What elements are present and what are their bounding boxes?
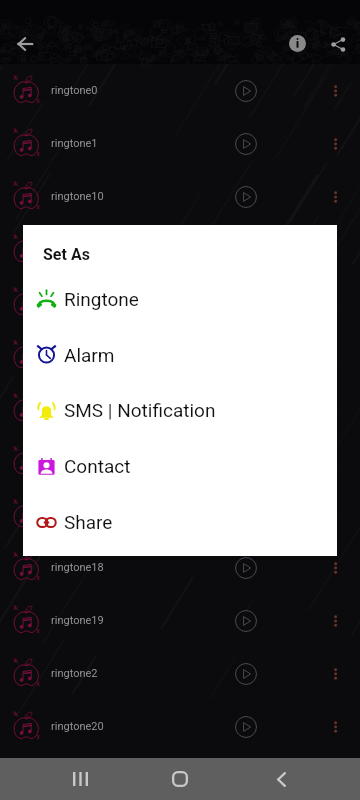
button[interactable]: ringtone0	[0, 64, 360, 117]
button[interactable]: ringtone14	[0, 382, 360, 435]
staticText: ringtone14	[51, 402, 104, 415]
button[interactable]: SMS | Notification	[23, 382, 337, 438]
button[interactable]: More options	[316, 338, 352, 374]
staticText: ringtone1	[51, 137, 98, 150]
button[interactable]: More options	[316, 126, 352, 162]
button[interactable]: Play	[224, 546, 268, 590]
button[interactable]: More options	[316, 709, 352, 745]
button[interactable]: ringtone12	[0, 276, 360, 329]
button[interactable]: Contact	[23, 438, 337, 494]
staticText: ringtone0	[51, 84, 98, 97]
staticText: ringtone10	[51, 190, 104, 203]
staticText: ringtone18	[51, 561, 104, 574]
button[interactable]: ringtone10	[0, 170, 360, 223]
staticText: Share	[64, 511, 113, 533]
button[interactable]: Play	[224, 599, 268, 643]
button[interactable]: Recent apps	[58, 758, 102, 800]
button[interactable]: More options	[316, 603, 352, 639]
button[interactable]: ringtone21	[0, 753, 360, 800]
button[interactable]: ringtone2	[0, 647, 360, 700]
staticText: SMS | Notification	[64, 399, 216, 421]
button[interactable]: Play	[224, 652, 268, 696]
button[interactable]: ringtone11	[0, 223, 360, 276]
button[interactable]: ringtone13	[0, 329, 360, 382]
button[interactable]: ringtone18	[0, 541, 360, 594]
button[interactable]: Share	[23, 494, 337, 550]
button[interactable]: More options	[316, 444, 352, 480]
staticText: ringtone13	[51, 349, 104, 362]
staticText: ringtone16	[51, 508, 104, 521]
button[interactable]: Play	[224, 175, 268, 219]
button[interactable]: More options	[316, 391, 352, 427]
button[interactable]: More options	[316, 656, 352, 692]
button[interactable]: Ringtone	[23, 271, 337, 327]
button[interactable]: Info	[275, 21, 319, 65]
button[interactable]: ringtone16	[0, 488, 360, 541]
button[interactable]: More options	[316, 73, 352, 109]
button[interactable]: Alarm	[23, 327, 337, 383]
button[interactable]: Back	[3, 22, 47, 66]
button[interactable]: Home	[158, 758, 202, 800]
button[interactable]: ringtone20	[0, 700, 360, 753]
button[interactable]: Share	[316, 22, 360, 66]
button[interactable]: ringtone1	[0, 117, 360, 170]
staticText: Contact	[64, 455, 131, 477]
staticText: ringtone20	[51, 720, 104, 733]
button[interactable]: Play	[224, 122, 268, 166]
button[interactable]: Play	[224, 705, 268, 749]
button[interactable]: More options	[316, 232, 352, 268]
staticText: Ringtone	[64, 288, 139, 310]
button[interactable]: Play	[224, 755, 268, 799]
staticText: ringtone19	[51, 614, 104, 627]
button[interactable]: More options	[316, 497, 352, 533]
staticText: ringtone21	[51, 770, 104, 783]
staticText: Set As	[43, 245, 90, 264]
staticText: ringtone2	[51, 667, 98, 680]
staticText: ringtone15	[51, 455, 104, 468]
button[interactable]: More options	[316, 179, 352, 215]
staticText: ringtone11	[51, 243, 104, 256]
button[interactable]: Back	[259, 758, 303, 800]
button[interactable]: ringtone15	[0, 435, 360, 488]
staticText: ringtone12	[51, 296, 104, 309]
button[interactable]: More options	[316, 285, 352, 321]
button[interactable]: Play	[224, 69, 268, 113]
button[interactable]: ringtone19	[0, 594, 360, 647]
staticText: Alarm	[64, 344, 115, 366]
button[interactable]: More options	[316, 550, 352, 586]
